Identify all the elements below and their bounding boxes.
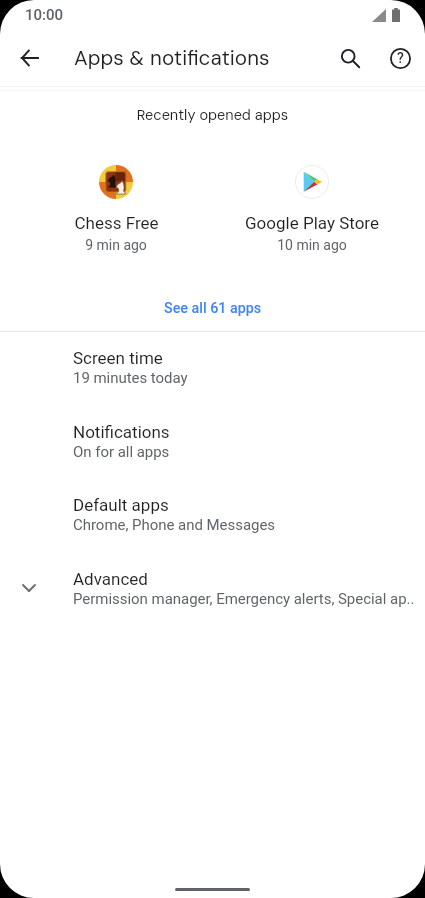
staticText: ? — [397, 50, 404, 66]
staticText: Advanced — [73, 569, 148, 589]
staticText: Recently opened apps — [0, 106, 425, 125]
staticText: Chrome, Phone and Messages — [73, 516, 276, 534]
staticText: Google Play Store — [245, 213, 379, 233]
staticText: 9 min ago — [85, 237, 147, 253]
button[interactable]: Search settings — [326, 34, 374, 82]
staticText: Permission manager, Emergency alerts, Sp… — [73, 590, 415, 608]
staticText: On for all apps — [73, 443, 170, 461]
staticText: Screen time — [73, 348, 163, 368]
staticText: 19 minutes today — [73, 369, 188, 387]
staticText: Default apps — [73, 495, 169, 515]
staticText: Chess Free — [74, 213, 159, 233]
staticText: 10 min ago — [277, 237, 347, 253]
staticText: Notifications — [73, 422, 170, 442]
button[interactable]: Google Play Store — [222, 165, 402, 253]
button[interactable]: See all 61 apps — [0, 292, 425, 324]
button[interactable]: Default apps — [0, 485, 425, 558]
staticText: Apps & notifications — [74, 45, 270, 72]
button[interactable]: Chess Free — [26, 165, 206, 253]
staticText: 10:00 — [25, 6, 64, 24]
button[interactable]: Advanced — [0, 559, 425, 632]
button[interactable]: Screen time — [0, 338, 425, 411]
staticText: See all 61 apps — [164, 300, 262, 317]
button[interactable]: Navigate up — [5, 34, 53, 82]
button[interactable]: Help and feedback — [376, 34, 424, 82]
button[interactable]: Notifications — [0, 412, 425, 485]
